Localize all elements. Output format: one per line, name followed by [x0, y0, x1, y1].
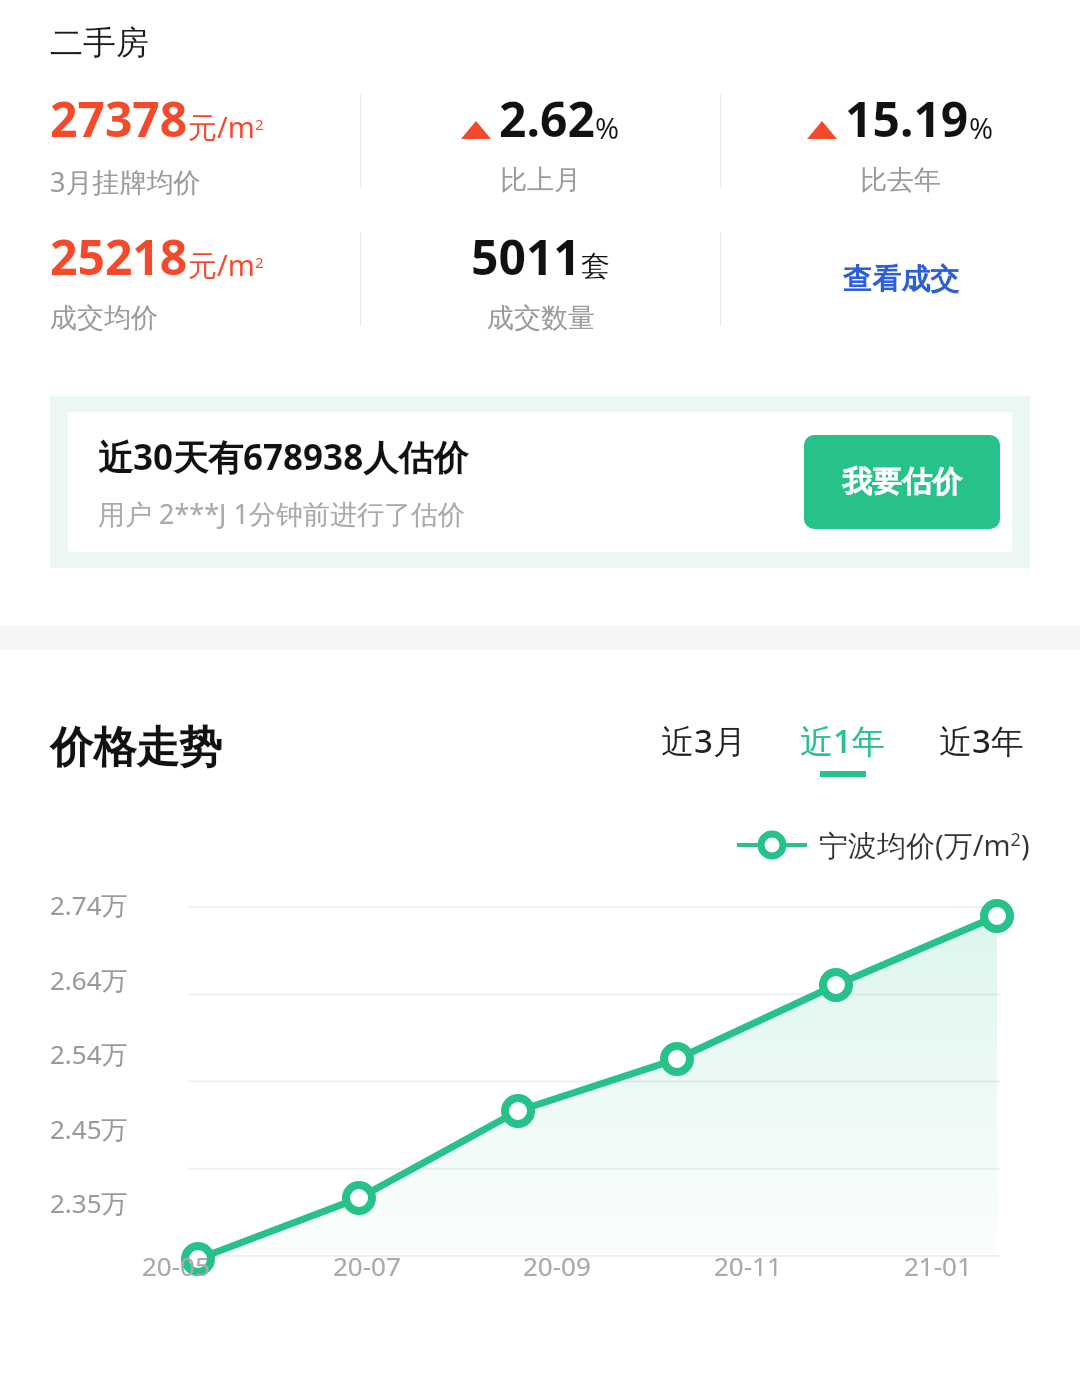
staticText: 元/m2 — [188, 107, 264, 147]
staticText: 近1年 — [800, 718, 885, 763]
staticText: 20-09 — [523, 1248, 591, 1283]
staticText: 近3月 — [661, 718, 746, 763]
staticText: 宁波均价(万/m2) — [819, 825, 1030, 865]
button[interactable]: 我要估价 — [804, 435, 1000, 529]
staticText: 元/m2 — [188, 245, 264, 285]
staticText: 25218 — [50, 224, 188, 289]
button[interactable]: 近30天有678938人估价 — [68, 412, 1012, 552]
staticText: 近30天有678938人估价 — [98, 433, 469, 481]
button[interactable]: 近1年 — [794, 712, 891, 783]
staticText: 比去年 — [860, 163, 941, 196]
staticText: 2.62 — [499, 86, 595, 151]
staticText: 比上月 — [500, 163, 581, 196]
staticText: 我要估价 — [842, 463, 962, 501]
staticText: 3月挂牌均价 — [50, 163, 201, 196]
button[interactable]: 近3月 — [655, 712, 752, 783]
staticText: 15.19 — [845, 86, 969, 151]
staticText: 近3年 — [939, 718, 1024, 763]
staticText: 成交数量 — [487, 301, 595, 334]
staticText: 二手房 — [50, 22, 149, 64]
staticText: 查看成交 — [843, 261, 959, 298]
staticText: 20-05 — [142, 1248, 210, 1283]
staticText: 用户 2***J 1分钟前进行了估价 — [98, 495, 465, 532]
staticText: 5011 — [471, 224, 581, 289]
staticText: % — [595, 108, 620, 147]
staticText: 2.74万 — [50, 887, 128, 923]
staticText: 2.54万 — [50, 1036, 128, 1072]
button[interactable]: 近3年 — [933, 712, 1030, 783]
staticText: 27378 — [50, 86, 188, 151]
staticText: 20-11 — [714, 1248, 782, 1283]
button[interactable]: 查看成交 — [829, 251, 973, 308]
staticText: 21-01 — [904, 1248, 972, 1283]
staticText: 2.45万 — [50, 1111, 128, 1147]
staticText: 套 — [581, 248, 610, 285]
staticText: 成交均价 — [50, 301, 158, 334]
staticText: 20-07 — [333, 1248, 401, 1283]
staticText: 2.35万 — [50, 1185, 128, 1221]
staticText: % — [969, 108, 994, 147]
staticText: 2.64万 — [50, 962, 128, 998]
staticText: 价格走势 — [50, 721, 222, 775]
